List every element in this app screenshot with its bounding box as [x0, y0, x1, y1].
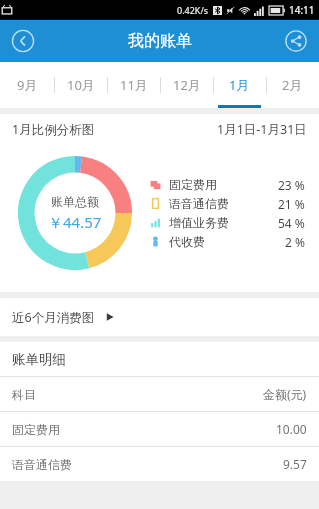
button[interactable]: 12月: [160, 62, 213, 108]
button[interactable]: 11月: [107, 62, 160, 108]
staticText: 12月: [173, 76, 201, 94]
staticText: 我的账单: [128, 31, 192, 51]
staticText: 1月比例分析图: [12, 121, 95, 138]
staticText: 语音通信费: [169, 196, 229, 211]
staticText: 增值业务费: [169, 215, 229, 230]
staticText: 1月: [229, 76, 250, 94]
staticText: 54 %: [278, 215, 305, 231]
staticText: 9.57: [283, 456, 307, 472]
staticText: 语音通信费: [12, 457, 72, 472]
staticText: 固定费用: [12, 422, 60, 437]
button[interactable]: 近6个月消费图: [0, 298, 319, 336]
staticText: 10月: [67, 76, 95, 94]
staticText: 账单总额: [51, 194, 99, 209]
staticText: ￥44.57: [48, 212, 102, 232]
staticText: 11月: [120, 76, 148, 94]
button[interactable]: 科目: [0, 377, 319, 411]
staticText: 账单明细: [12, 351, 66, 368]
button[interactable]: Share: [283, 28, 309, 54]
button[interactable]: 语音通信费: [0, 447, 319, 481]
staticText: 2 %: [285, 234, 305, 250]
button[interactable]: 9月: [0, 62, 54, 108]
staticText: 9月: [17, 76, 38, 94]
button[interactable]: Back: [10, 28, 36, 54]
staticText: 2月: [282, 76, 303, 94]
button[interactable]: 1月: [213, 62, 266, 108]
staticText: 金额(元): [263, 386, 307, 402]
staticText: 代收费: [169, 234, 205, 249]
button[interactable]: 10月: [54, 62, 107, 108]
staticText: 10.00: [276, 421, 307, 437]
button[interactable]: 2月: [266, 62, 319, 108]
staticText: 科目: [12, 387, 36, 402]
staticText: 0.42K/s: [177, 4, 209, 16]
staticText: 近6个月消费图: [12, 309, 95, 326]
staticText: 14:11: [289, 3, 315, 17]
staticText: 23 %: [278, 177, 305, 193]
staticText: 固定费用: [169, 177, 217, 192]
button[interactable]: 固定费用: [0, 412, 319, 446]
staticText: 21 %: [278, 196, 305, 212]
staticText: 1月1日-1月31日: [217, 121, 307, 138]
